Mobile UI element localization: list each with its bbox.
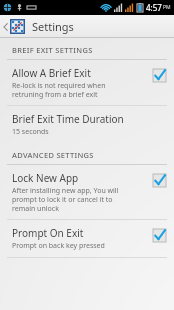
staticText: Allow A Brief Exit	[12, 66, 91, 80]
button[interactable]: Brief Exit Time Duration	[0, 106, 174, 143]
other: Toggle Allow A Brief Exit	[153, 69, 166, 82]
staticText: 15 seconds	[12, 127, 49, 137]
staticText: Re-lock is not required when retruning f…	[12, 81, 106, 99]
staticText: Settings	[32, 19, 74, 34]
staticText: Prompt On Exit	[12, 226, 84, 240]
staticText: Prompt on back key pressed	[12, 241, 105, 251]
button[interactable]: Allow A Brief Exit	[0, 60, 174, 105]
staticText: BREIF EXIT SETTINGS	[12, 45, 93, 55]
staticText: 4:57	[146, 2, 162, 13]
staticText: PM	[163, 4, 171, 11]
staticText: Lock New App	[12, 171, 79, 185]
other: Toggle Lock New App	[153, 174, 166, 187]
button[interactable]: Prompt On Exit	[0, 220, 174, 257]
button[interactable]: Navigate up	[0, 15, 174, 38]
button[interactable]: Lock New App	[0, 165, 174, 219]
staticText: Brief Exit Time Duration	[12, 112, 124, 126]
staticText: ADVANCED SETTINGS	[12, 150, 94, 160]
staticText: After installing new app, You will promp…	[12, 186, 119, 213]
other: Toggle Prompt On Exit	[153, 229, 166, 242]
